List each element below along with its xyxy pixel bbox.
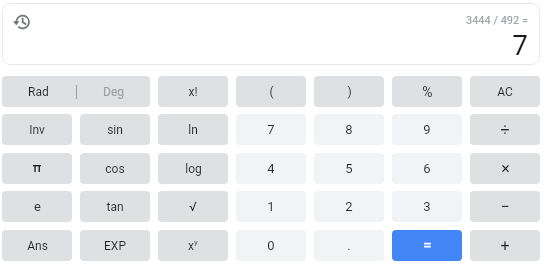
button[interactable]: EXP — [80, 230, 150, 261]
staticText: 6 — [423, 161, 431, 176]
button[interactable]: sin — [80, 114, 150, 145]
button[interactable]: log — [158, 153, 228, 184]
button[interactable]: ln — [158, 114, 228, 145]
staticText: 3 — [423, 199, 431, 214]
staticText: x — [188, 239, 194, 253]
staticText: × — [501, 159, 510, 178]
staticText: Ans — [27, 239, 48, 253]
staticText: log — [185, 162, 202, 176]
button[interactable]: 2 — [314, 191, 384, 222]
button[interactable]: 1 — [236, 191, 306, 222]
button[interactable]: 5 — [314, 153, 384, 184]
staticText: Inv — [29, 123, 45, 137]
staticText: . — [347, 238, 351, 253]
button[interactable]: = — [392, 230, 462, 261]
button[interactable]: 8 — [314, 114, 384, 145]
button[interactable]: ( — [236, 76, 306, 107]
staticText: x! — [188, 85, 198, 99]
staticText: 4 — [267, 161, 275, 176]
staticText: 3444 / 492 = — [465, 14, 528, 27]
button[interactable]: x — [158, 230, 228, 261]
staticText: sin — [107, 123, 123, 137]
staticText: 7 — [267, 122, 275, 137]
staticText: 8 — [345, 122, 353, 137]
button[interactable]: History — [12, 12, 32, 32]
staticText: e — [34, 199, 41, 214]
staticText: 7 — [512, 29, 528, 62]
staticText: y — [194, 238, 198, 247]
button[interactable]: 4 — [236, 153, 306, 184]
button[interactable]: 0 — [236, 230, 306, 261]
staticText: Rad — [28, 85, 49, 99]
button[interactable]: % — [392, 76, 462, 107]
button[interactable]: Deg — [76, 76, 150, 107]
staticText: ( — [269, 85, 274, 99]
staticText: tan — [106, 200, 124, 214]
staticText: ) — [347, 85, 352, 99]
button[interactable]: 6 — [392, 153, 462, 184]
button[interactable]: 3 — [392, 191, 462, 222]
button[interactable]: 7 — [236, 114, 306, 145]
staticText: 9 — [423, 122, 431, 137]
staticText: 2 — [345, 199, 353, 214]
staticText: √ — [189, 199, 197, 214]
staticText: 0 — [267, 238, 275, 253]
button[interactable]: ÷ — [470, 114, 540, 145]
staticText: 1 — [267, 199, 275, 214]
staticText: EXP — [104, 239, 126, 253]
button[interactable]: 9 — [392, 114, 462, 145]
button[interactable]: x! — [158, 76, 228, 107]
button[interactable]: ) — [314, 76, 384, 107]
button[interactable]: − — [470, 191, 540, 222]
button[interactable]: + — [470, 230, 540, 261]
staticText: 5 — [345, 161, 353, 176]
staticText: AC — [497, 85, 513, 99]
button[interactable]: Inv — [2, 114, 72, 145]
button[interactable]: tan — [80, 191, 150, 222]
button[interactable]: × — [470, 153, 540, 184]
button[interactable]: pi — [2, 153, 72, 184]
staticText: ÷ — [500, 120, 510, 139]
button[interactable]: Ans — [2, 230, 72, 261]
button[interactable]: √ — [158, 191, 228, 222]
button[interactable]: cos — [80, 153, 150, 184]
button[interactable]: . — [314, 230, 384, 261]
staticText: = — [423, 236, 432, 255]
button[interactable]: Rad — [2, 76, 75, 107]
staticText: Deg — [103, 85, 124, 99]
staticText: ln — [188, 123, 198, 137]
staticText: % — [422, 84, 433, 100]
staticText: + — [500, 236, 510, 255]
staticText: cos — [105, 162, 125, 176]
staticText: − — [500, 197, 510, 216]
button[interactable]: AC — [470, 76, 540, 107]
button[interactable]: e — [2, 191, 72, 222]
